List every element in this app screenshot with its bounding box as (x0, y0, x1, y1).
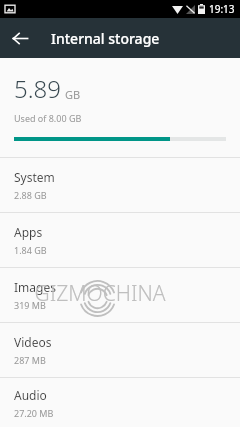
staticText: 1.84 GB (14, 244, 47, 256)
staticText: 319 MB (14, 299, 46, 311)
button[interactable]: Audio (0, 378, 240, 427)
staticText: GIZMOCHINA (6, 279, 194, 308)
button[interactable]: System (0, 158, 240, 212)
staticText: Apps (14, 224, 43, 240)
staticText: 2.88 GB (14, 189, 47, 201)
button[interactable]: Back (0, 18, 40, 58)
staticText: 287 MB (14, 354, 46, 366)
staticText: 27.20 MB (14, 407, 54, 419)
staticText: System (14, 169, 55, 185)
staticText: 19:13 (209, 2, 235, 16)
staticText: Audio (14, 387, 47, 403)
staticText: Internal storage (51, 29, 160, 48)
staticText: Images (14, 279, 56, 295)
staticText: GB (65, 87, 81, 102)
staticText: 5.89 (14, 72, 61, 105)
staticText: Used of 8.00 GB (14, 112, 82, 124)
button[interactable]: Images (0, 268, 240, 322)
staticText: Videos (14, 334, 52, 350)
button[interactable]: Videos (0, 323, 240, 377)
button[interactable]: Apps (0, 213, 240, 267)
